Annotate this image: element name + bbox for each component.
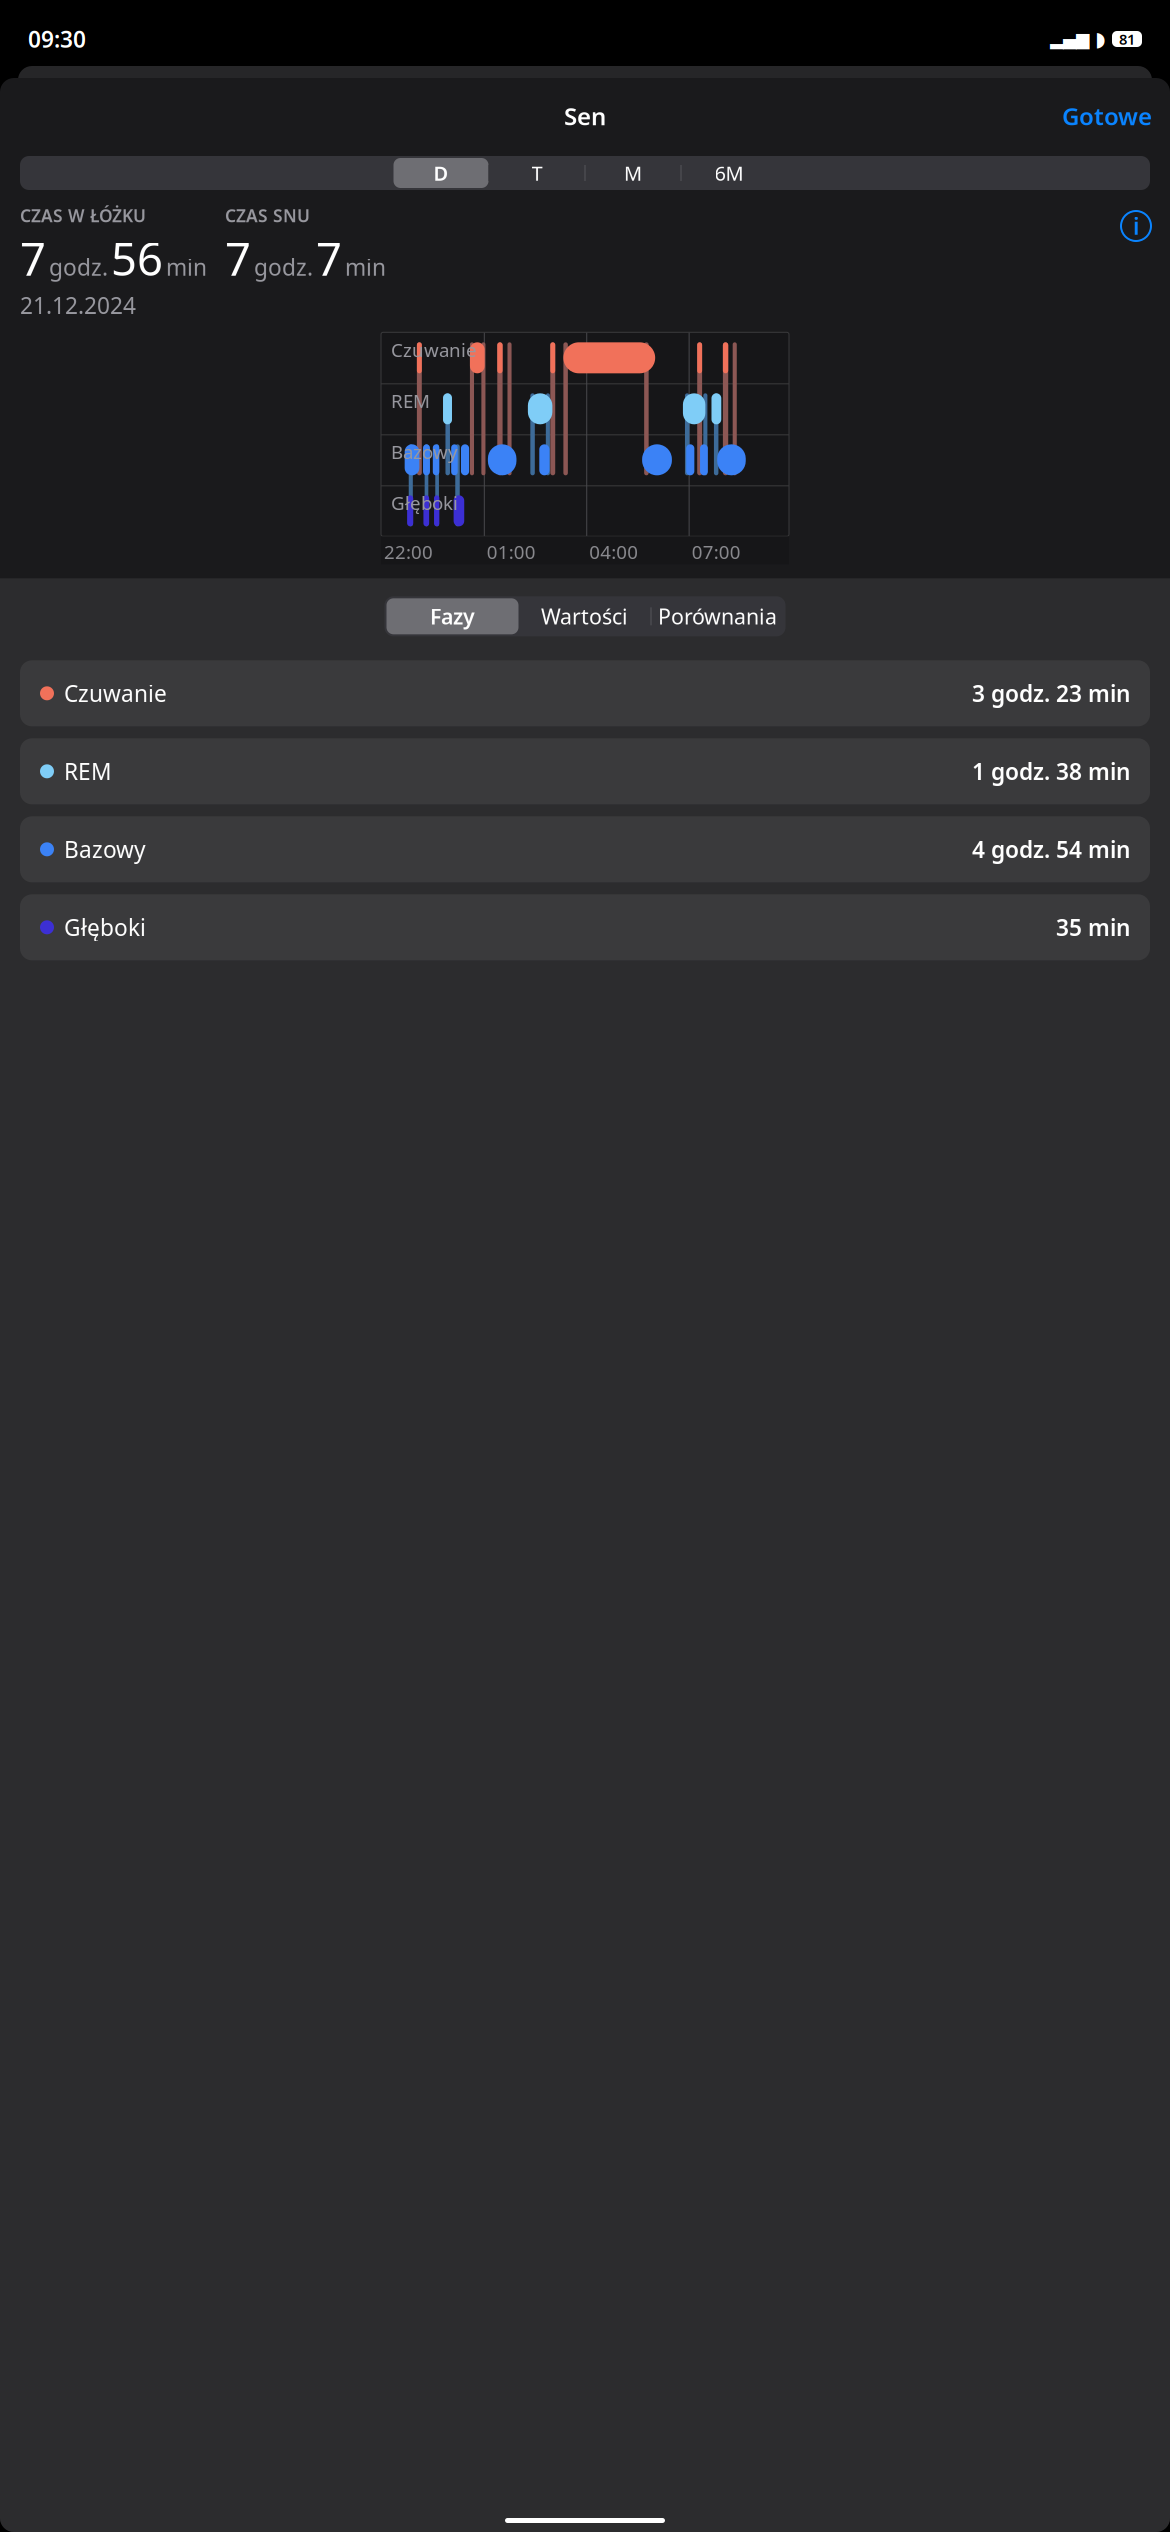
staticText: i	[1133, 211, 1139, 241]
staticText: ▂▄▆	[1050, 29, 1089, 49]
staticText: 07:00	[692, 539, 741, 564]
button[interactable]: Informacje	[1114, 204, 1158, 248]
staticText: 09:30	[28, 24, 86, 54]
staticText: Bazowy	[391, 439, 458, 464]
staticText: Fazy	[430, 602, 475, 630]
staticText: 22:00	[384, 539, 433, 564]
staticText: 7	[20, 228, 46, 288]
staticText: Czuwanie	[64, 678, 167, 708]
button[interactable]: Fazy	[386, 598, 518, 634]
staticText: CZAS SNU	[225, 204, 310, 227]
staticText: 81	[1119, 29, 1135, 49]
staticText: M	[624, 160, 642, 186]
staticText: REM	[391, 388, 430, 413]
button[interactable]: Wartości	[518, 598, 650, 634]
staticText: min	[345, 252, 386, 282]
staticText: T	[531, 160, 542, 186]
staticText: 21.12.2024	[20, 290, 136, 320]
staticText: Gotowe	[1062, 100, 1152, 132]
staticText: 04:00	[589, 539, 638, 564]
staticText: 01:00	[487, 539, 536, 564]
staticText: Sen	[564, 100, 606, 132]
staticText: 56	[111, 228, 163, 288]
staticText: godz.	[49, 252, 108, 282]
staticText: 1 godz. 38 min	[972, 756, 1130, 786]
button[interactable]: T	[489, 158, 584, 188]
staticText: 7	[316, 228, 342, 288]
staticText: 6M	[714, 160, 743, 186]
button[interactable]: REM	[20, 738, 1150, 804]
button[interactable]: Porównania	[651, 598, 783, 634]
staticText: Bazowy	[64, 834, 146, 864]
button[interactable]: Czuwanie	[20, 660, 1150, 726]
staticText: CZAS W ŁÓŻKU	[20, 204, 146, 227]
button[interactable]: D	[393, 158, 488, 188]
staticText: REM	[64, 756, 112, 786]
button[interactable]: M	[585, 158, 680, 188]
staticText: 4 godz. 54 min	[972, 834, 1130, 864]
staticText: ◗	[1095, 28, 1106, 50]
button[interactable]: 6M	[681, 158, 776, 188]
staticText: min	[166, 252, 207, 282]
staticText: 35 min	[1056, 912, 1130, 942]
button[interactable]: Gotowe	[1044, 92, 1170, 140]
staticText: 3 godz. 23 min	[972, 678, 1130, 708]
staticText: godz.	[254, 252, 313, 282]
staticText: Czuwanie	[391, 337, 477, 362]
staticText: 7	[225, 228, 251, 288]
button[interactable]: Głęboki	[20, 894, 1150, 960]
staticText: Głęboki	[64, 912, 146, 942]
staticText: D	[433, 160, 448, 186]
button[interactable]: Bazowy	[20, 816, 1150, 882]
staticText: Porównania	[658, 602, 777, 630]
staticText: Wartości	[541, 602, 628, 630]
staticText: Głęboki	[391, 490, 458, 515]
